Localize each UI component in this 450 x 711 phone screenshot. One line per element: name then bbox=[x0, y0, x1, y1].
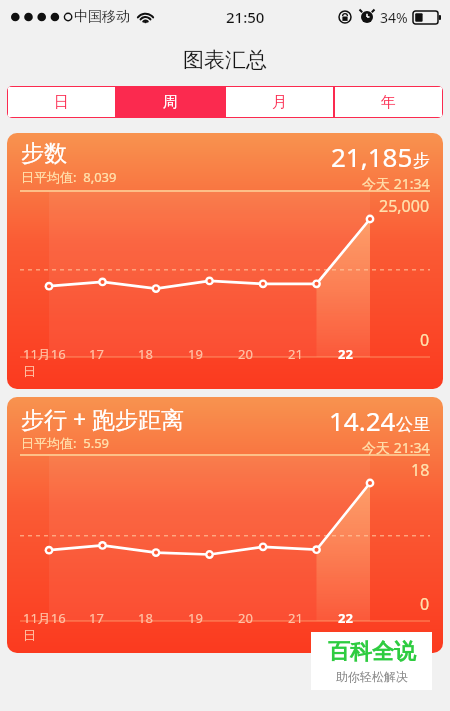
button[interactable]: 月 bbox=[226, 87, 333, 117]
button[interactable]: 周 bbox=[117, 87, 224, 117]
staticText: 18 bbox=[138, 609, 153, 627]
staticText: 19 bbox=[188, 609, 203, 627]
staticText: 34% bbox=[380, 8, 408, 27]
staticText: 17 bbox=[89, 609, 104, 627]
staticText: 中国移动 bbox=[74, 8, 130, 26]
staticText: 17 bbox=[89, 345, 104, 363]
staticText: 21 bbox=[288, 345, 303, 363]
staticText: 今天 21:34 bbox=[362, 438, 430, 457]
staticText: 14.24 bbox=[329, 403, 396, 438]
staticText: 日 bbox=[54, 93, 69, 112]
staticText: 步 bbox=[413, 150, 430, 171]
staticText: 18 bbox=[138, 345, 153, 363]
staticText: 25,000 bbox=[379, 195, 430, 217]
staticText: 月 bbox=[272, 93, 287, 112]
staticText: 21 bbox=[288, 609, 303, 627]
staticText: 日平均值: 8,039 bbox=[21, 168, 117, 186]
staticText: 19 bbox=[188, 345, 203, 363]
staticText: 0 bbox=[420, 329, 430, 351]
staticText: 图表汇总 bbox=[183, 47, 267, 73]
staticText: 步行 + 跑步距离 bbox=[21, 403, 185, 434]
staticText: 18 bbox=[411, 459, 430, 481]
button[interactable]: 日 bbox=[8, 87, 115, 117]
button[interactable]: 步数 bbox=[7, 133, 443, 389]
staticText: 周 bbox=[163, 93, 178, 112]
staticText: 21,185 bbox=[331, 139, 413, 174]
staticText: 今天 21:34 bbox=[362, 174, 430, 193]
staticText: 百科全说 bbox=[328, 638, 416, 666]
staticText: 11月16日 bbox=[23, 609, 72, 644]
staticText: 20 bbox=[238, 609, 253, 627]
button[interactable]: 步行 + 跑步距离 bbox=[7, 397, 443, 653]
staticText: 0 bbox=[420, 593, 430, 615]
staticText: 20 bbox=[238, 345, 253, 363]
staticText: 日平均值: 5.59 bbox=[21, 434, 110, 452]
staticText: 22 bbox=[338, 345, 353, 363]
staticText: 21:50 bbox=[226, 7, 265, 27]
staticText: 步数 bbox=[21, 139, 67, 168]
staticText: 公里 bbox=[396, 414, 430, 435]
staticText: 22 bbox=[338, 609, 353, 627]
staticText: 年 bbox=[381, 93, 396, 112]
staticText: 助你轻松解决 bbox=[336, 669, 408, 684]
staticText: 11月16日 bbox=[23, 345, 72, 380]
button[interactable]: 年 bbox=[335, 87, 442, 117]
